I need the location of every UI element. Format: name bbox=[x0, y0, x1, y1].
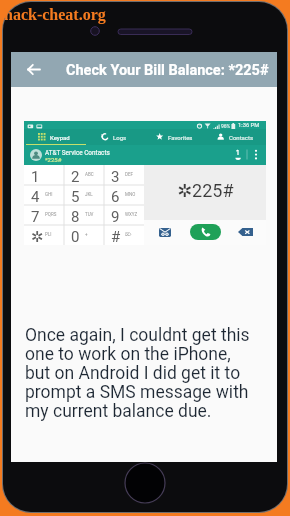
button[interactable]: ✲ bbox=[24, 225, 64, 245]
staticText: ✲225# bbox=[177, 180, 234, 201]
staticText: MNO bbox=[125, 192, 136, 197]
button[interactable]: 1 bbox=[24, 165, 64, 185]
button[interactable]: 2 bbox=[64, 165, 104, 185]
staticText: Once again, I couldnt get this one to wo… bbox=[25, 325, 253, 422]
button[interactable]: 7 bbox=[24, 205, 64, 225]
staticText: # bbox=[111, 228, 121, 246]
staticText: 3 bbox=[111, 168, 120, 186]
staticText: PQRS bbox=[45, 212, 57, 217]
button[interactable]: # bbox=[104, 225, 144, 245]
button[interactable]: Backspace bbox=[238, 228, 253, 236]
staticText: WXYZ bbox=[125, 212, 138, 217]
staticText: TUV bbox=[85, 212, 94, 217]
staticText: 2 bbox=[71, 168, 80, 186]
staticText: 1 bbox=[31, 168, 40, 186]
button[interactable]: 9 bbox=[104, 205, 144, 225]
staticText: 8 bbox=[71, 208, 80, 226]
button[interactable]: Call bbox=[190, 224, 221, 240]
staticText: 7 bbox=[31, 208, 40, 226]
button[interactable]: 5 bbox=[64, 185, 104, 205]
staticText: Logs bbox=[113, 134, 127, 141]
button[interactable]: 3 bbox=[104, 165, 144, 185]
staticText: Contacts bbox=[229, 134, 254, 141]
staticText: + bbox=[85, 232, 88, 237]
staticText: Keypad bbox=[50, 134, 70, 141]
button[interactable]: Keypad bbox=[24, 129, 84, 145]
staticText: 9 bbox=[111, 208, 120, 226]
staticText: PLI bbox=[45, 232, 52, 237]
staticText: ✲ bbox=[31, 228, 44, 245]
button[interactable]: Logs bbox=[84, 129, 144, 145]
staticText: GHI bbox=[45, 192, 53, 197]
staticText: 5 bbox=[71, 188, 80, 206]
staticText: JKL bbox=[85, 192, 93, 197]
staticText: 1:36 PM bbox=[238, 122, 260, 129]
staticText: ABC bbox=[85, 172, 94, 177]
staticText: AT&T Service Contacts bbox=[45, 149, 110, 157]
button[interactable]: Voicemail bbox=[159, 228, 171, 237]
staticText: hack-cheat.org bbox=[4, 6, 106, 24]
button[interactable]: Back bbox=[22, 58, 45, 81]
staticText: Check Your Bill Balance: *225# bbox=[66, 62, 269, 79]
staticText: DEF bbox=[125, 172, 133, 177]
staticText: 4 bbox=[31, 188, 40, 206]
button[interactable]: 8 bbox=[64, 205, 104, 225]
button[interactable]: Contacts bbox=[205, 129, 266, 145]
staticText: *225# bbox=[45, 156, 62, 163]
button[interactable]: 4 bbox=[24, 185, 64, 205]
staticText: 6 bbox=[111, 188, 120, 206]
staticText: ⌦ bbox=[125, 232, 132, 237]
button[interactable]: 6 bbox=[104, 185, 144, 205]
button[interactable]: 0 bbox=[64, 225, 104, 245]
staticText: 0 bbox=[71, 228, 80, 246]
staticText: 96% bbox=[221, 123, 231, 129]
staticText: Favorites bbox=[168, 134, 193, 141]
button[interactable]: Favorites bbox=[144, 129, 205, 145]
